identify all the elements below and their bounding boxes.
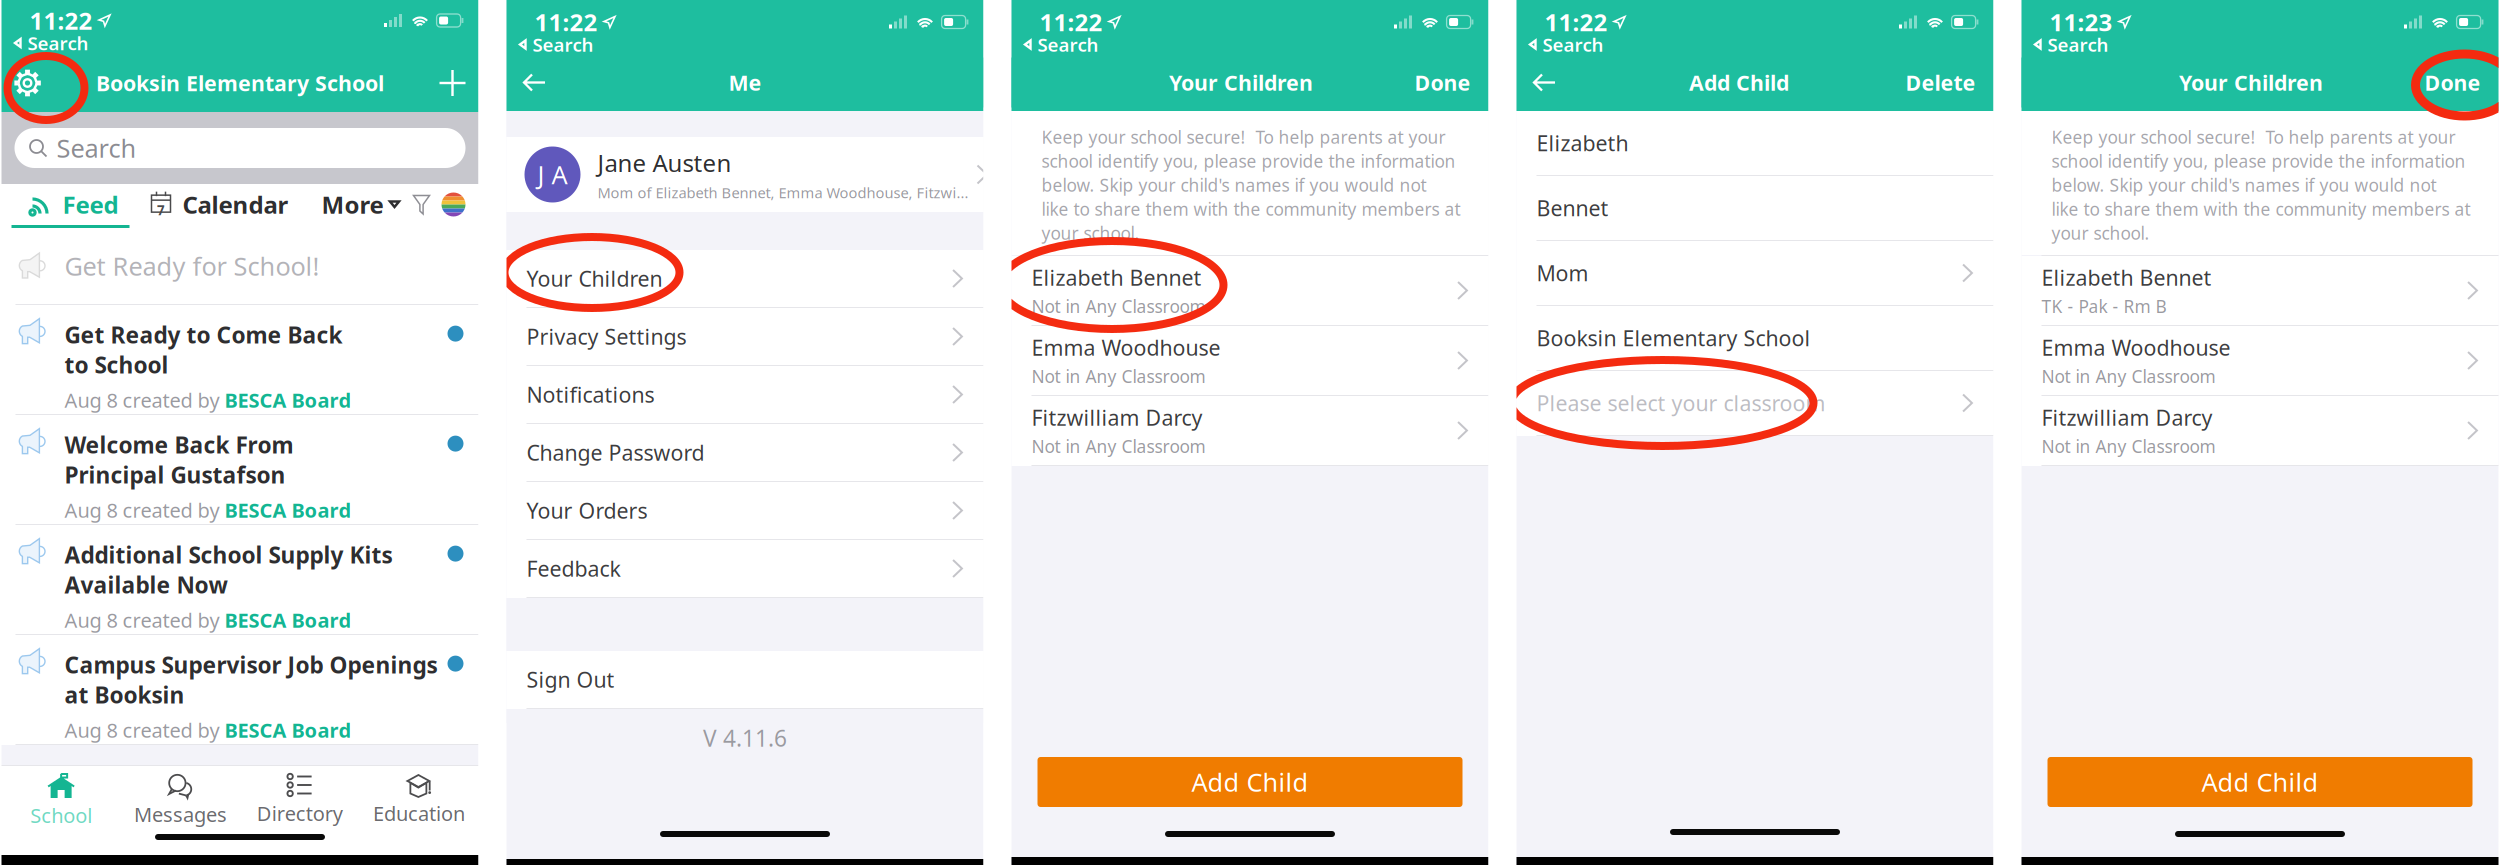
button[interactable]: Booksin Elementary School bbox=[1516, 306, 1993, 371]
staticText: Fitzwilliam Darcy bbox=[1031, 403, 1202, 432]
button[interactable]: Sign Out bbox=[506, 651, 983, 709]
staticText: Aug 8 created by bbox=[64, 717, 219, 743]
staticText: Principal Gustafson bbox=[64, 460, 285, 490]
staticText: Delete bbox=[1905, 68, 1975, 97]
button[interactable]: J A bbox=[506, 137, 983, 212]
staticText: J A bbox=[537, 158, 567, 191]
staticText: below. Skip your child's names if you wo… bbox=[2051, 173, 2436, 196]
staticText: BESCA Board bbox=[224, 387, 351, 413]
staticText: Aug 8 created by bbox=[64, 387, 219, 413]
button[interactable]: Elizabeth Bennet bbox=[2021, 256, 2498, 326]
staticText: Search bbox=[56, 131, 136, 165]
staticText: Welcome Back From bbox=[64, 430, 293, 460]
button[interactable]: Directory bbox=[240, 766, 359, 834]
staticText: TK - Pak - Rm B bbox=[2041, 295, 2166, 318]
staticText: Notifications bbox=[526, 380, 654, 409]
staticText: Messages bbox=[134, 801, 227, 828]
button[interactable]: Profile bbox=[430, 184, 465, 225]
staticText: Education bbox=[373, 800, 465, 827]
button[interactable]: Emma Woodhouse bbox=[2021, 326, 2498, 396]
button[interactable]: Add Child bbox=[1037, 757, 1462, 807]
button[interactable]: Feedback bbox=[506, 540, 983, 598]
button[interactable]: Messages bbox=[121, 766, 240, 834]
staticText: 11:22 bbox=[1039, 6, 1102, 38]
button[interactable]: Back bbox=[1516, 57, 1572, 107]
staticText: Search bbox=[2047, 32, 2108, 57]
staticText: 7 bbox=[157, 201, 165, 219]
staticText: Booksin Elementary School bbox=[1536, 324, 1810, 352]
button[interactable]: Mom bbox=[1516, 241, 1993, 306]
staticText: 11:23 bbox=[2049, 6, 2112, 38]
button[interactable]: Add Child bbox=[2047, 757, 2472, 807]
button[interactable]: Please select your classroom bbox=[1516, 371, 1993, 436]
button[interactable]: Elizabeth Bennet bbox=[1011, 256, 1488, 326]
button[interactable]: Elizabeth bbox=[1516, 111, 1993, 176]
staticText: Bennet bbox=[1536, 194, 1608, 222]
staticText: Add Child bbox=[1191, 765, 1308, 799]
staticText: Please select your classroom bbox=[1536, 389, 1825, 417]
button[interactable]: Notifications bbox=[506, 366, 983, 424]
staticText: Add Child bbox=[1689, 68, 1789, 97]
staticText: Mom of Elizabeth Bennet, Emma Woodhouse,… bbox=[597, 183, 968, 202]
staticText: Campus Supervisor Job Openings bbox=[64, 650, 437, 680]
staticText: BESCA Board bbox=[224, 717, 351, 743]
button[interactable]: Education bbox=[359, 766, 478, 834]
staticText: Your Children bbox=[2179, 68, 2323, 97]
button[interactable]: Feed bbox=[1, 184, 150, 225]
staticText: Calendar bbox=[182, 189, 288, 220]
staticText: Your Children bbox=[1169, 68, 1313, 97]
staticText: Not in Any Classroom bbox=[2041, 365, 2215, 388]
staticText: school identify you, please provide the … bbox=[1041, 149, 1455, 172]
staticText: Available Now bbox=[64, 570, 227, 600]
staticText: BESCA Board bbox=[224, 607, 351, 633]
button[interactable]: Add bbox=[426, 55, 478, 111]
button[interactable]: Your Children bbox=[506, 250, 983, 308]
button[interactable]: Campus Supervisor Job Openings bbox=[1, 635, 478, 745]
button[interactable]: Your Orders bbox=[506, 482, 983, 540]
button[interactable]: Back bbox=[506, 57, 562, 107]
staticText: BESCA Board bbox=[224, 497, 351, 523]
button[interactable]: Emma Woodhouse bbox=[1011, 326, 1488, 396]
staticText: Your Children bbox=[526, 264, 662, 293]
staticText: Search bbox=[532, 32, 593, 57]
button[interactable]: Get Ready to Come Back bbox=[1, 305, 478, 415]
staticText: Get Ready for School! bbox=[64, 249, 319, 283]
button[interactable]: More bbox=[321, 184, 399, 225]
staticText: Mom bbox=[1536, 259, 1588, 287]
staticText: like to share them with the community me… bbox=[2051, 197, 2470, 220]
staticText: Search bbox=[27, 31, 88, 55]
button[interactable]: Filter bbox=[399, 184, 430, 225]
staticText: Not in Any Classroom bbox=[1031, 295, 1205, 318]
staticText: Aug 8 created by bbox=[64, 607, 219, 633]
staticText: Sign Out bbox=[526, 665, 614, 694]
staticText: Done bbox=[1414, 68, 1470, 97]
button[interactable]: Fitzwilliam Darcy bbox=[2021, 396, 2498, 466]
button[interactable]: 7 bbox=[150, 184, 288, 225]
staticText: Keep your school secure! To help parents… bbox=[2051, 125, 2455, 148]
staticText: Done bbox=[2424, 68, 2480, 97]
button[interactable]: Privacy Settings bbox=[506, 308, 983, 366]
staticText: Get Ready to Come Back bbox=[64, 320, 342, 350]
button[interactable]: Additional School Supply Kits bbox=[1, 525, 478, 635]
button[interactable]: Bennet bbox=[1516, 176, 1993, 241]
staticText: Elizabeth bbox=[1536, 129, 1628, 157]
button[interactable]: Done bbox=[2424, 57, 2498, 107]
staticText: 11:22 bbox=[534, 6, 597, 38]
staticText: school identify you, please provide the … bbox=[2051, 149, 2465, 172]
staticText: School bbox=[30, 802, 92, 829]
staticText: 11:22 bbox=[1544, 6, 1607, 38]
button[interactable]: Delete bbox=[1905, 57, 1993, 107]
button[interactable]: Fitzwilliam Darcy bbox=[1011, 396, 1488, 466]
staticText: Fitzwilliam Darcy bbox=[2041, 403, 2212, 432]
button[interactable]: Change Password bbox=[506, 424, 983, 482]
button[interactable]: Welcome Back From bbox=[1, 415, 478, 525]
button[interactable]: Done bbox=[1414, 57, 1488, 107]
staticText: Your Orders bbox=[526, 496, 647, 525]
button[interactable]: Settings bbox=[1, 55, 53, 111]
button[interactable]: School bbox=[1, 766, 121, 834]
staticText: below. Skip your child's names if you wo… bbox=[1041, 173, 1426, 196]
staticText: Keep your school secure! To help parents… bbox=[1041, 125, 1445, 148]
staticText: Privacy Settings bbox=[526, 322, 686, 351]
staticText: Feedback bbox=[526, 554, 620, 583]
staticText: Booksin Elementary School bbox=[96, 69, 384, 97]
